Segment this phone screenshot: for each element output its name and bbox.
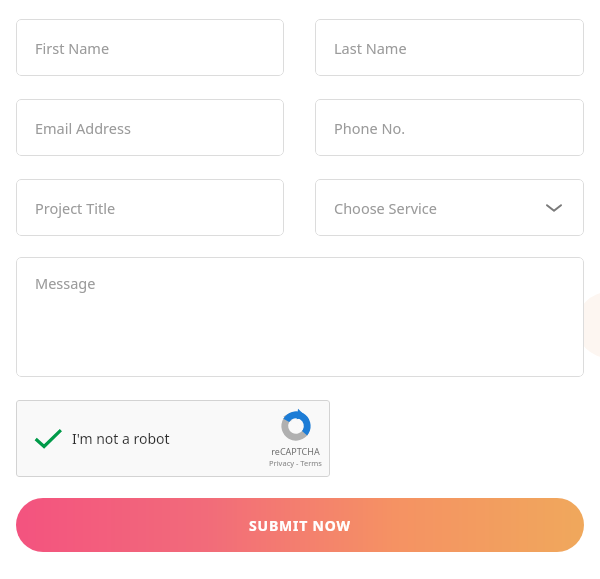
button[interactable]: SUBMIT NOW (16, 498, 584, 552)
button[interactable]: Choose Service (315, 179, 584, 236)
staticText: First Name (35, 38, 110, 58)
button[interactable]: Phone No. (315, 99, 584, 156)
button[interactable]: First Name (16, 19, 284, 76)
button[interactable]: Last Name (315, 19, 584, 76)
button[interactable]: Email Address (16, 99, 284, 156)
staticText: Choose Service (334, 198, 437, 218)
staticText: I'm not a robot (72, 429, 170, 448)
staticText: Last Name (334, 38, 407, 58)
staticText: reCAPTCHA (271, 445, 320, 457)
staticText: Privacy - Terms (269, 458, 322, 468)
button[interactable]: Project Title (16, 179, 284, 236)
staticText: Email Address (35, 118, 131, 138)
staticText: Message (35, 273, 96, 293)
staticText: Project Title (35, 198, 116, 218)
button[interactable]: Message (16, 257, 584, 377)
staticText: Phone No. (334, 118, 406, 138)
staticText: SUBMIT NOW (249, 516, 351, 535)
button[interactable]: I'm not a robot reCAPTCHA (16, 400, 330, 477)
